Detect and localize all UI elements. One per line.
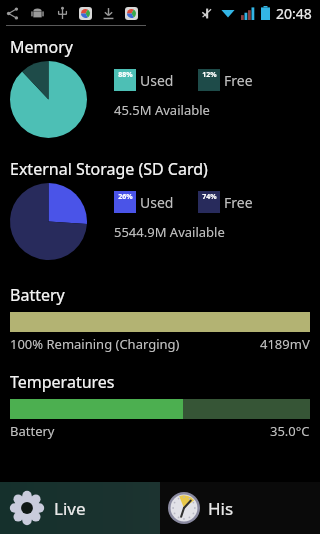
staticText: Used (140, 71, 174, 90)
staticText: Used (140, 193, 174, 212)
staticText: His (208, 497, 234, 520)
staticText: 45.5M Available (114, 101, 210, 119)
staticText: Free (224, 193, 253, 212)
staticText: Free (224, 71, 253, 90)
staticText: External Storage (SD Card) (10, 158, 208, 180)
staticText: 100% Remaining (Charging) (10, 335, 180, 353)
staticText: 4189mV (260, 335, 310, 353)
staticText: Memory (10, 36, 73, 58)
staticText: Live (54, 497, 86, 520)
other: Live (10, 491, 44, 525)
staticText: 26% (118, 192, 133, 202)
staticText: Battery (10, 422, 55, 440)
other: History (168, 492, 200, 524)
staticText: 12% (202, 70, 217, 80)
button[interactable]: Live (0, 482, 160, 534)
staticText: 74% (202, 192, 217, 202)
staticText: Temperatures (10, 371, 115, 393)
button[interactable]: History (160, 482, 320, 534)
staticText: 88% (118, 70, 133, 80)
staticText: 20:48 (276, 4, 312, 23)
staticText: 5544.9M Available (114, 223, 225, 241)
staticText: 35.0°C (270, 422, 310, 440)
staticText: Battery (10, 284, 65, 306)
